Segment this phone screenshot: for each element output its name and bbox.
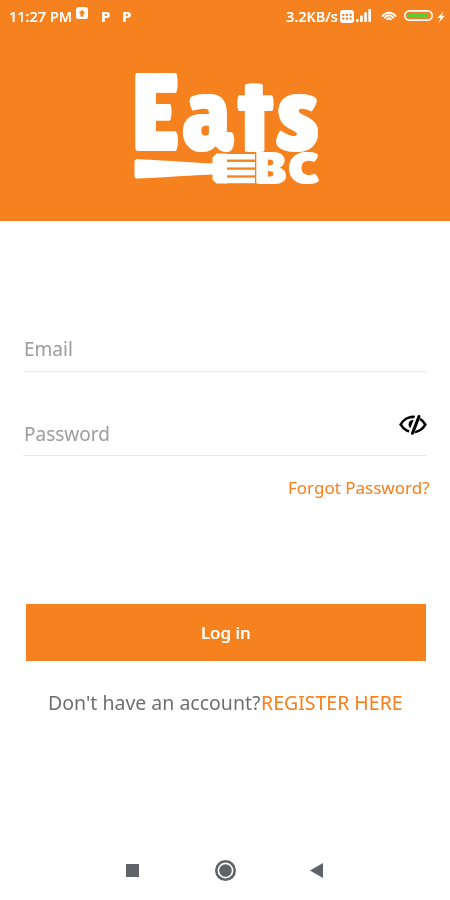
staticText: Password <box>24 421 110 447</box>
staticText: 11:27 PM <box>9 6 73 26</box>
staticText: Forgot Password? <box>288 476 430 499</box>
staticText: Eats <box>130 48 321 176</box>
staticText: P <box>122 6 132 26</box>
button[interactable]: Log in <box>26 604 426 661</box>
staticText: Log in <box>201 621 251 644</box>
staticText: REGISTER HERE <box>261 689 403 716</box>
button[interactable]: Recent apps <box>108 846 156 894</box>
button[interactable]: Show password <box>400 414 426 434</box>
button[interactable]: REGISTER HERE <box>261 689 403 716</box>
staticText: 3.2KB/s <box>286 6 338 26</box>
staticText: BC <box>253 143 321 194</box>
button[interactable]: Back <box>292 846 340 894</box>
staticText: P <box>101 6 111 26</box>
button[interactable]: Forgot Password? <box>288 476 430 499</box>
button[interactable]: Home <box>201 846 249 894</box>
staticText: Email <box>24 336 73 362</box>
staticText: Don't have an account? <box>48 689 261 716</box>
